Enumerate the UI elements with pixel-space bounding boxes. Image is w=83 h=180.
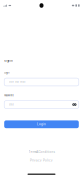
button[interactable]: Login — [4, 120, 79, 128]
staticText: Sign in — [4, 59, 12, 62]
button[interactable]: Privacy Policy — [30, 159, 53, 162]
staticText: Privacy Policy — [30, 159, 53, 162]
button[interactable]: Terms&Conditions — [28, 150, 54, 154]
staticText: Enter your email — [9, 81, 26, 83]
staticText: Login — [4, 71, 9, 74]
staticText: Password — [4, 94, 13, 97]
staticText: Terms&Conditions — [28, 150, 54, 154]
staticText: Login — [37, 123, 46, 126]
staticText: Enter — [9, 103, 14, 106]
